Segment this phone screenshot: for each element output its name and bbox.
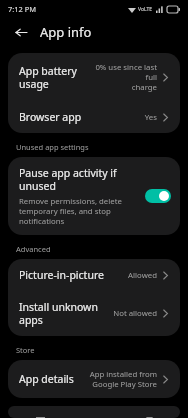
staticText: Advanced bbox=[16, 244, 51, 254]
button[interactable]: App battery usage bbox=[8, 53, 180, 101]
staticText: App battery usage bbox=[19, 64, 81, 91]
staticText: Picture-in-picture bbox=[19, 268, 124, 282]
staticText: App installed from Google Play Store bbox=[89, 369, 157, 389]
staticText: Pause app activity if unused bbox=[19, 166, 117, 193]
staticText: App info bbox=[40, 23, 92, 41]
staticText: Allowed bbox=[128, 270, 157, 281]
staticText: VoLTE bbox=[138, 6, 153, 13]
staticText: App details bbox=[19, 372, 85, 386]
button[interactable]: App details bbox=[8, 360, 180, 398]
button[interactable]: Picture-in-picture bbox=[8, 259, 180, 291]
staticText: Install unknown apps bbox=[19, 300, 109, 327]
staticText: Remove permissions, delete temporary fil… bbox=[19, 196, 122, 226]
staticText: Not allowed bbox=[113, 308, 157, 319]
button[interactable]: Browser app bbox=[8, 101, 180, 133]
staticText: 7:12 PM bbox=[8, 4, 37, 14]
staticText: 0% use since last full charge bbox=[85, 62, 157, 92]
staticText: Store bbox=[16, 345, 35, 355]
staticText: Browser app bbox=[19, 110, 140, 124]
button[interactable]: Pause app activity toggle bbox=[145, 189, 171, 203]
button[interactable]: Install unknown apps bbox=[8, 291, 180, 336]
staticText: Yes bbox=[144, 112, 157, 123]
button[interactable]: version 124.1.0 bbox=[8, 406, 180, 418]
staticText: Unused app settings bbox=[16, 142, 89, 152]
button[interactable]: Back bbox=[11, 22, 31, 42]
button[interactable]: Pause app activity if unused bbox=[8, 157, 180, 235]
